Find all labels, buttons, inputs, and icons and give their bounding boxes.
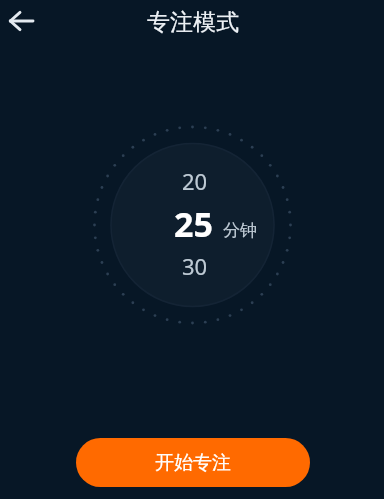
button[interactable]: 25 bbox=[123, 201, 263, 243]
staticText: 30 bbox=[182, 251, 208, 281]
button[interactable]: 开始专注 bbox=[76, 438, 310, 487]
staticText: 分钟 bbox=[223, 220, 257, 241]
staticText: 专注模式 bbox=[147, 8, 239, 37]
button[interactable]: 30 bbox=[155, 251, 235, 281]
button[interactable]: 20 bbox=[155, 166, 235, 196]
staticText: 开始专注 bbox=[155, 451, 231, 475]
staticText: 20 bbox=[182, 166, 208, 196]
button[interactable]: Back bbox=[3, 3, 39, 39]
staticText: 25 bbox=[174, 201, 213, 243]
